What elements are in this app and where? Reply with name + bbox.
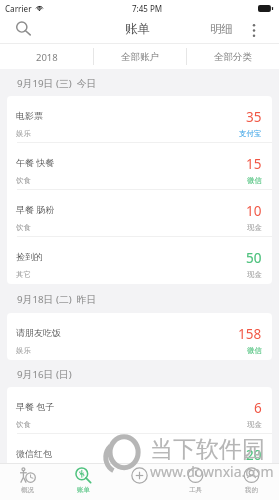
staticText: 支付宝 (239, 129, 262, 138)
button[interactable]: 全部账户 (94, 43, 186, 69)
staticText: 其它 (16, 270, 31, 279)
staticText: 当下软件园 (150, 435, 265, 464)
staticText: 现金 (247, 223, 262, 232)
button[interactable]: 早餐 肠粉 (7, 190, 272, 237)
button[interactable]: 我的 (223, 463, 279, 500)
button[interactable]: More options (229, 17, 279, 43)
staticText: 9月18日 (二) 昨日 (17, 293, 97, 306)
button[interactable]: 概况 (0, 463, 55, 500)
staticText: 全部分类 (214, 51, 252, 63)
staticText: 账单 (125, 21, 150, 37)
staticText: 7:45 PM (132, 3, 163, 14)
staticText: 20 (246, 446, 262, 463)
staticText: 现金 (247, 420, 262, 429)
button[interactable]: 早餐 包子 (7, 387, 272, 434)
staticText: 2018 (36, 51, 58, 64)
staticText: 电影票 (16, 110, 43, 121)
button[interactable]: 账单 (55, 463, 111, 500)
staticText: 请朋友吃饭 (16, 327, 61, 338)
button[interactable]: 2018 (0, 43, 93, 69)
staticText: 早餐 包子 (16, 400, 55, 412)
staticText: 微信红包 (16, 448, 52, 459)
staticText: 9月16日 (日) (17, 368, 72, 381)
staticText: 我的 (245, 486, 258, 494)
staticText: 158 (238, 325, 262, 343)
button[interactable]: Search (0, 17, 42, 43)
button[interactable]: Add record (111, 463, 167, 500)
button[interactable]: 微信红包 (7, 434, 272, 463)
button[interactable]: 捡到的 (7, 237, 272, 284)
staticText: www.downxia.com (150, 462, 274, 481)
staticText: 账单 (77, 486, 90, 494)
staticText: 饮食 (16, 420, 31, 429)
staticText: 15 (246, 155, 262, 173)
staticText: 概况 (21, 486, 34, 494)
button[interactable]: 午餐 快餐 (7, 143, 272, 190)
staticText: 微信 (247, 346, 262, 355)
staticText: 50 (246, 249, 262, 267)
staticText: Carrier (5, 3, 32, 14)
button[interactable]: 工具 (167, 463, 223, 500)
staticText: 现金 (247, 270, 262, 279)
button[interactable]: 明细 (202, 20, 241, 40)
button[interactable]: 请朋友吃饭 (7, 313, 272, 360)
staticText: 饮食 (16, 223, 31, 232)
staticText: 9月19日 (三) 今日 (17, 77, 97, 90)
staticText: 全部账户 (121, 51, 159, 63)
staticText: 捡到的 (16, 251, 43, 262)
staticText: 娱乐 (16, 346, 31, 355)
staticText: 娱乐 (16, 129, 31, 138)
staticText: 明细 (210, 22, 233, 36)
button[interactable]: 电影票 (7, 96, 272, 143)
button[interactable]: 全部分类 (187, 43, 279, 69)
staticText: 早餐 肠粉 (16, 203, 55, 215)
staticText: 微信 (247, 176, 262, 185)
staticText: 35 (246, 108, 262, 126)
staticText: 饮食 (16, 176, 31, 185)
staticText: 午餐 快餐 (16, 156, 55, 168)
staticText: 工具 (189, 486, 202, 494)
staticText: 6 (254, 399, 262, 417)
staticText: 10 (246, 202, 262, 220)
button[interactable]: 账单 (115, 19, 160, 41)
